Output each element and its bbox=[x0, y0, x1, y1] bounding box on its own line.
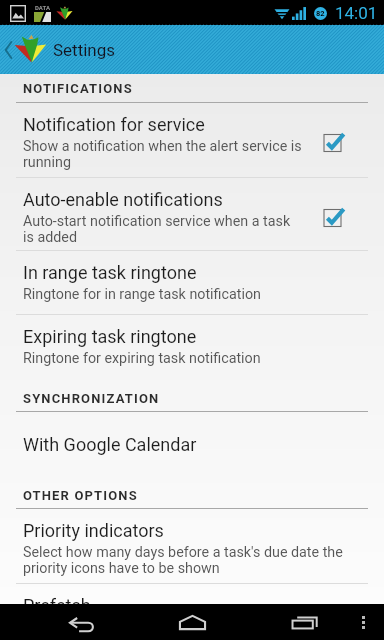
staticText: Priority indicators bbox=[23, 520, 164, 541]
staticText: NOTIFICATIONS bbox=[23, 81, 133, 96]
button[interactable]: Navigate up bbox=[0, 25, 384, 74]
staticText: Expiring task ringtone bbox=[23, 326, 197, 347]
staticText: Auto-enable notifications bbox=[23, 189, 223, 210]
staticText: priority icons have to be shown bbox=[23, 560, 220, 577]
button[interactable]: Priority indicators bbox=[0, 509, 384, 583]
staticText: Select how many days before a task's due… bbox=[23, 544, 343, 561]
staticText: SYNCHRONIZATION bbox=[23, 391, 160, 406]
button[interactable]: With Google Calendar bbox=[0, 412, 384, 476]
staticText: 82 bbox=[316, 9, 325, 18]
staticText: Ringtone for in range task notification bbox=[23, 286, 261, 303]
button[interactable]: Back bbox=[49, 604, 113, 640]
staticText: Prefetch bbox=[23, 595, 91, 604]
staticText: running bbox=[23, 154, 71, 171]
staticText: Auto-start notification service when a t… bbox=[23, 213, 291, 230]
staticText: In range task ringtone bbox=[23, 262, 197, 283]
staticText: DATA bbox=[35, 4, 50, 11]
button[interactable]: Home bbox=[160, 604, 224, 640]
staticText: 14:01 bbox=[335, 3, 378, 23]
staticText: Show a notification when the alert servi… bbox=[23, 138, 302, 155]
button[interactable]: In range task ringtone bbox=[0, 251, 384, 314]
staticText: With Google Calendar bbox=[23, 434, 197, 455]
staticText: Settings bbox=[53, 40, 116, 60]
staticText: is added bbox=[23, 229, 77, 246]
button[interactable]: Recent apps bbox=[273, 604, 337, 640]
staticText: Ringtone for expiring task notification bbox=[23, 350, 261, 367]
button[interactable]: Prefetch bbox=[0, 584, 384, 604]
staticText: Notification for service bbox=[23, 114, 205, 135]
button[interactable]: Notification for service bbox=[0, 103, 384, 177]
button[interactable]: Auto-enable notifications bbox=[0, 178, 384, 250]
button[interactable]: More options bbox=[350, 604, 376, 640]
staticText: OTHER OPTIONS bbox=[23, 488, 138, 503]
other: Navigate up bbox=[5, 42, 12, 58]
button[interactable]: Expiring task ringtone bbox=[0, 315, 384, 379]
